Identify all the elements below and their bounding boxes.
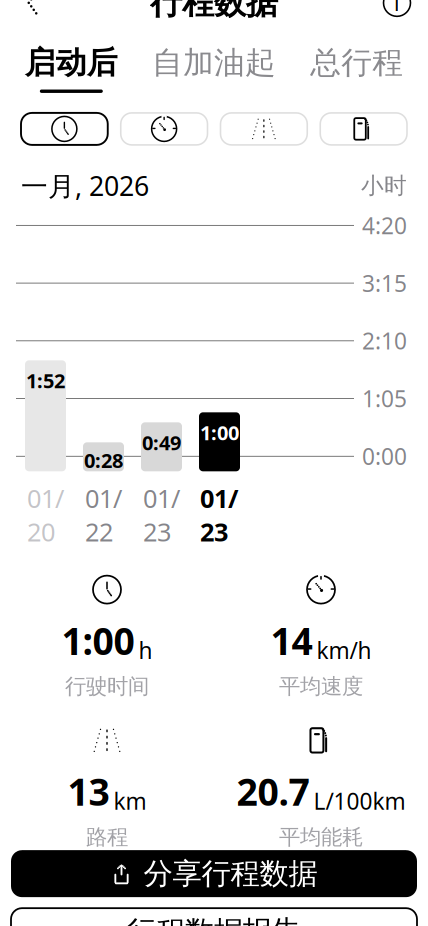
- staticText: km: [113, 786, 146, 816]
- staticText: 20.7: [236, 766, 309, 816]
- button[interactable]: 行程数据报告: [11, 908, 417, 926]
- staticText: 行程数据报告: [127, 914, 301, 926]
- staticText: 01/23: [143, 481, 180, 549]
- staticText: 1:00: [61, 616, 134, 665]
- staticText: 自加油起: [152, 44, 276, 81]
- staticText: 路程: [86, 824, 128, 850]
- staticText: 分享行程数据: [143, 856, 317, 892]
- button[interactable]: 行驶时间: [21, 113, 108, 145]
- staticText: 启动后: [25, 44, 118, 81]
- staticText: 平均速度: [279, 673, 363, 699]
- button[interactable]: 启动后: [0, 39, 143, 98]
- staticText: 01/22: [85, 481, 122, 549]
- staticText: 1:00: [200, 419, 239, 446]
- staticText: 1:05: [362, 383, 407, 414]
- staticText: 行程数据: [150, 0, 278, 22]
- staticText: 0:28: [84, 447, 123, 474]
- button[interactable]: 路程: [220, 113, 307, 145]
- staticText: km/h: [316, 635, 371, 665]
- staticText: 平均能耗: [279, 824, 363, 850]
- staticText: 行驶时间: [65, 673, 149, 699]
- staticText: i: [394, 0, 400, 17]
- button[interactable]: 自加油起: [143, 39, 285, 98]
- staticText: 01/23: [200, 481, 239, 549]
- staticText: 01/20: [27, 481, 64, 549]
- staticText: 小时: [361, 172, 407, 199]
- button[interactable]: 平均速度: [121, 113, 208, 145]
- staticText: 1:52: [26, 367, 65, 394]
- staticText: 总行程: [310, 44, 403, 81]
- button[interactable]: 分享行程数据: [11, 850, 417, 897]
- staticText: 2:10: [362, 326, 407, 356]
- staticText: 一月, 2026: [21, 168, 149, 203]
- button[interactable]: 信息: [375, 0, 419, 25]
- staticText: 3:15: [362, 268, 407, 298]
- staticText: 0:00: [362, 441, 407, 471]
- staticText: L/100km: [313, 786, 405, 816]
- button[interactable]: 总行程: [285, 39, 428, 98]
- staticText: 4:20: [362, 210, 407, 240]
- staticText: h: [138, 635, 152, 665]
- staticText: 13: [67, 766, 109, 816]
- staticText: 14: [270, 616, 312, 665]
- button[interactable]: 平均能耗: [320, 113, 407, 145]
- button[interactable]: 返回: [9, 0, 53, 25]
- staticText: 0:49: [142, 429, 181, 456]
